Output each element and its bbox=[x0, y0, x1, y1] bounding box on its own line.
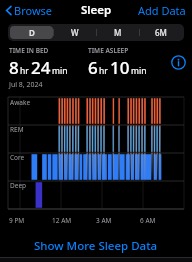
staticText: REM bbox=[10, 125, 24, 134]
button[interactable]: Show More Sleep Data bbox=[0, 235, 192, 257]
staticText: 24 bbox=[31, 56, 51, 79]
staticText: Show More Sleep Data bbox=[34, 238, 158, 254]
staticText: Jul 8, 2024 bbox=[9, 80, 43, 90]
button[interactable]: Browse bbox=[3, 1, 55, 20]
staticText: M bbox=[114, 27, 122, 38]
staticText: Awake bbox=[10, 98, 31, 107]
button[interactable]: D bbox=[10, 26, 53, 39]
button[interactable]: M bbox=[97, 26, 139, 39]
staticText: Core bbox=[10, 153, 25, 162]
button[interactable]: Add Data bbox=[136, 1, 188, 20]
staticText: Add Data bbox=[138, 3, 186, 18]
staticText: hr bbox=[99, 65, 108, 77]
staticText: Deep bbox=[10, 181, 27, 190]
staticText: 6 AM bbox=[140, 216, 156, 225]
staticText: 9 PM bbox=[9, 216, 25, 225]
staticText: 3 AM bbox=[96, 216, 112, 225]
staticText: Sleep bbox=[81, 2, 112, 18]
staticText: min bbox=[131, 65, 147, 77]
button[interactable]: Info bbox=[171, 55, 186, 70]
staticText: TIME ASLEEP bbox=[88, 46, 129, 55]
staticText: 8 bbox=[9, 56, 19, 79]
button[interactable]: 6M bbox=[140, 26, 182, 39]
staticText: Browse bbox=[14, 3, 53, 18]
staticText: min bbox=[52, 65, 68, 77]
staticText: 6M bbox=[155, 27, 167, 38]
staticText: TIME IN BED bbox=[9, 46, 49, 55]
staticText: 12 AM bbox=[52, 216, 72, 225]
staticText: D bbox=[29, 27, 35, 38]
staticText: W bbox=[71, 27, 79, 38]
staticText: 10 bbox=[110, 56, 130, 79]
staticText: hr bbox=[20, 65, 29, 77]
button[interactable]: W bbox=[54, 26, 96, 39]
staticText: 6 bbox=[88, 56, 98, 79]
